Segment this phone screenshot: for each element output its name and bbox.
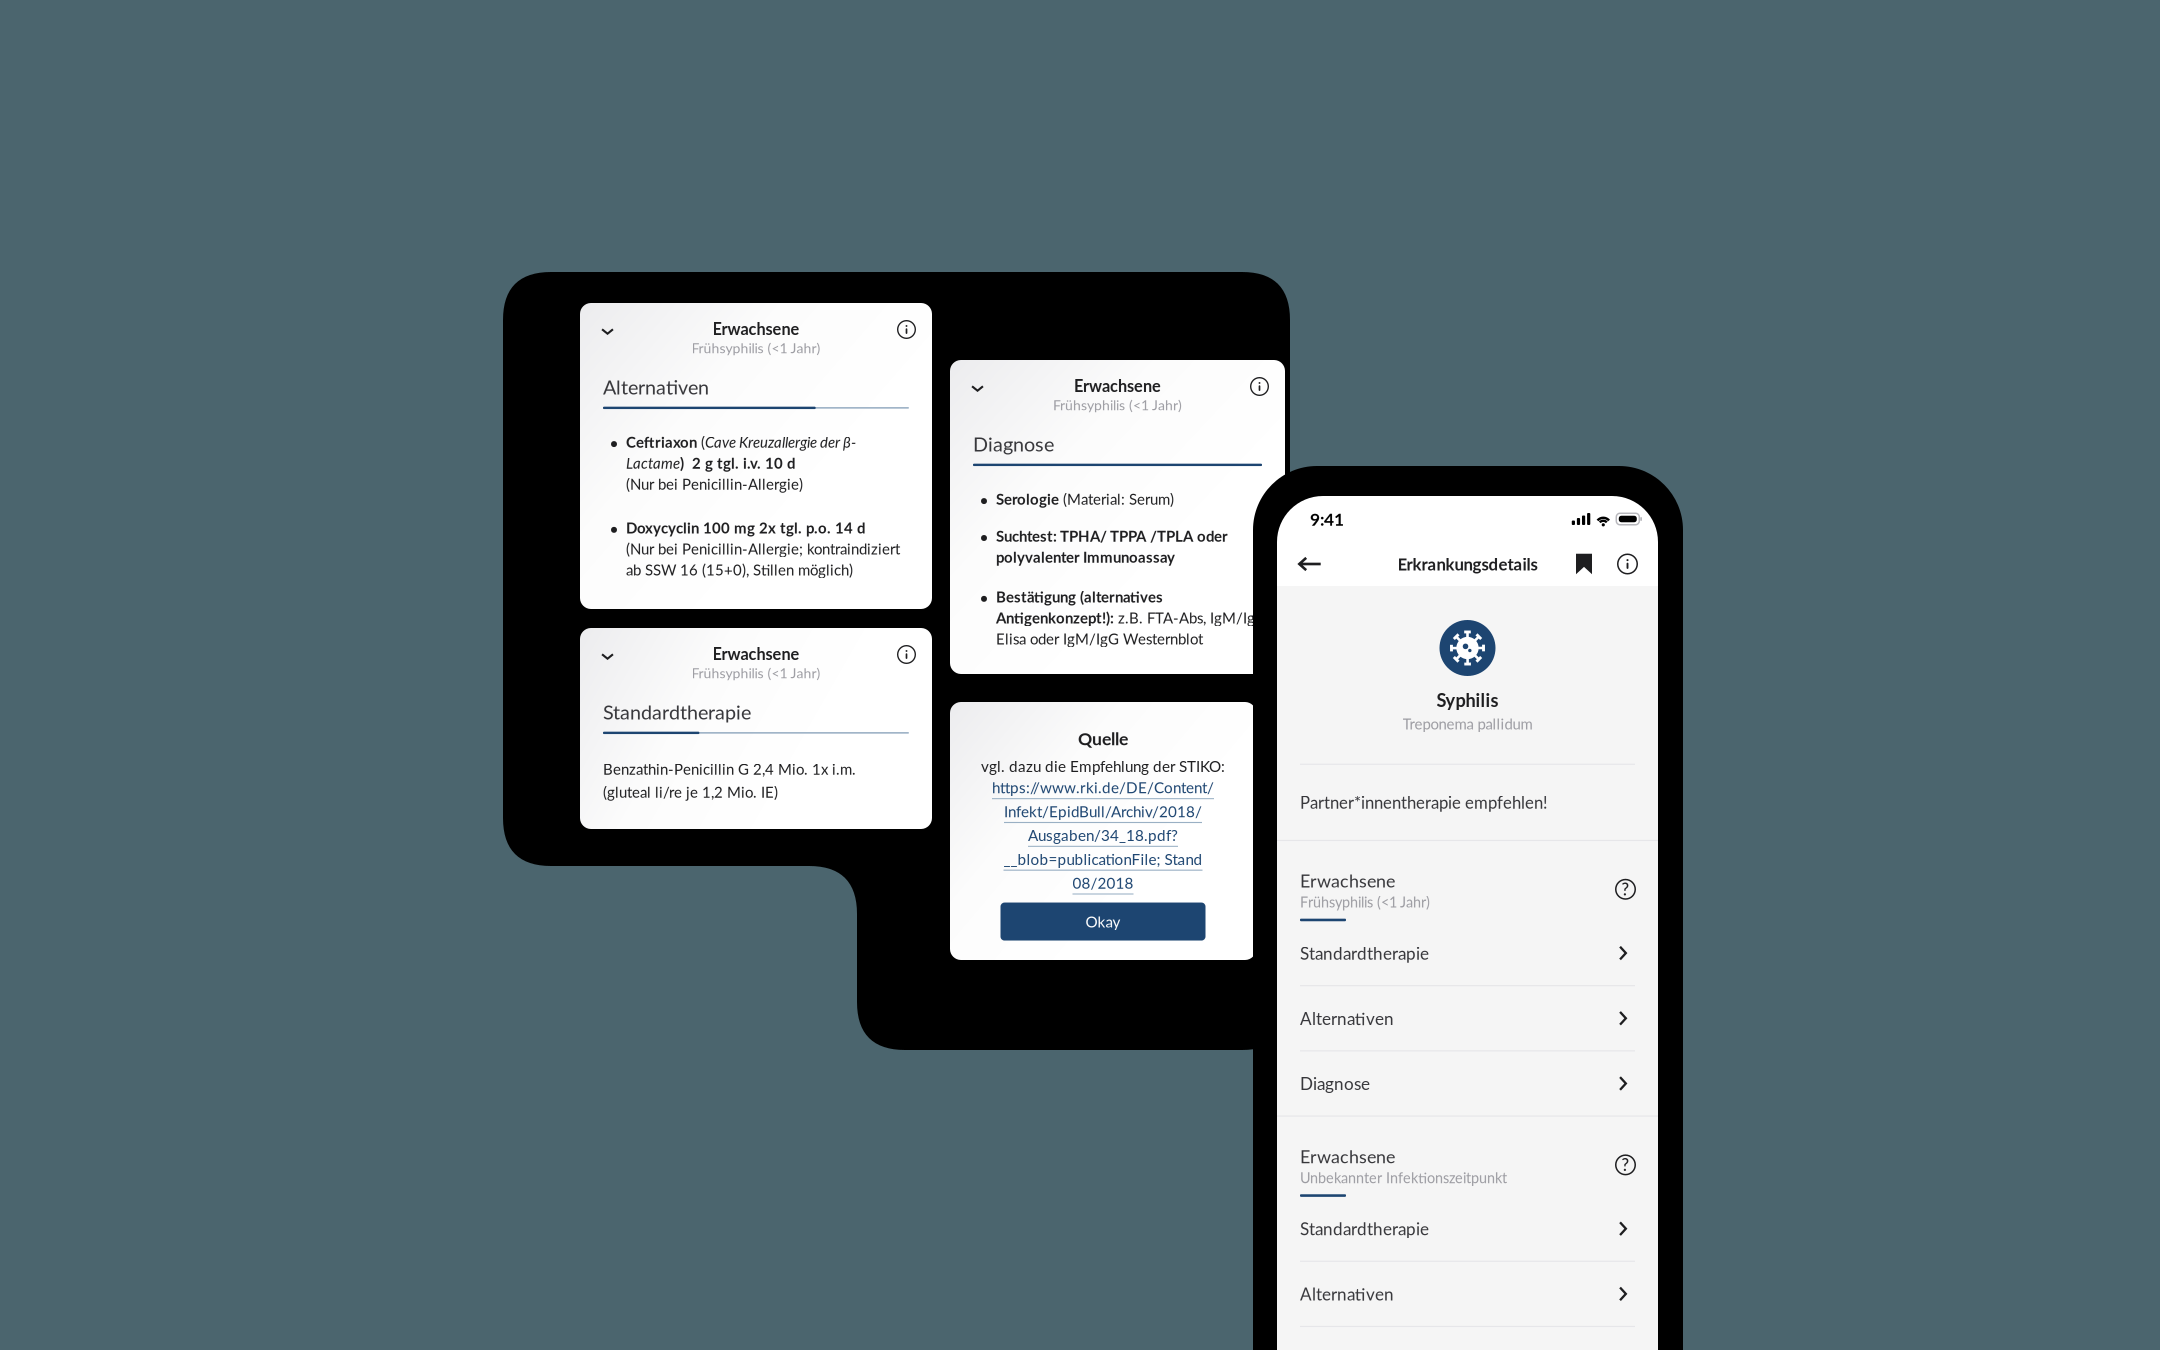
staticText: ( — [701, 433, 705, 451]
button[interactable]: Ausgaben/34_18.pdf? — [1028, 826, 1178, 847]
button[interactable]: Hilfe — [1615, 879, 1636, 900]
staticText: https://www.rki.de/DE/Content/ — [992, 778, 1214, 797]
staticText: Frühsyphilis (<1 Jahr) — [691, 664, 820, 681]
button[interactable]: Hilfe — [1615, 1154, 1636, 1175]
staticText: __blob=publicationFile; Stand — [1003, 850, 1202, 868]
button[interactable]: Standardtherapie — [1277, 921, 1658, 985]
staticText: Serologie — [996, 490, 1063, 508]
staticText: Frühsyphilis (<1 Jahr) — [691, 339, 820, 356]
staticText: Standardtherapie — [603, 700, 751, 724]
button[interactable]: Diagnose — [1277, 1051, 1658, 1115]
staticText: 9:41 — [1310, 509, 1344, 529]
button[interactable]: Lesezeichen — [1576, 554, 1592, 574]
staticText: Bestätigung (alternatives — [996, 588, 1163, 606]
staticText: z.B. FTA-Abs, IgM/IgG — [1114, 609, 1266, 627]
staticText: Doxycyclin 100 mg 2x tgl. p.o. 14 d — [626, 519, 865, 537]
staticText: Benzathin-Penicillin G 2,4 Mio. 1x i.m. — [603, 760, 856, 778]
button[interactable]: Alternativen — [1277, 1262, 1658, 1326]
staticText: ? — [1621, 879, 1629, 899]
staticText: Ausgaben/34_18.pdf? — [1028, 826, 1178, 844]
staticText: Erkrankungsdetails — [1397, 554, 1537, 574]
staticText: Frühsyphilis (<1 Jahr) — [1300, 893, 1430, 911]
button[interactable]: __blob=publicationFile; Stand — [1003, 850, 1202, 871]
button[interactable]: Info — [1250, 377, 1269, 396]
staticText: Erwachsene — [712, 644, 799, 663]
button[interactable]: Info — [897, 320, 916, 339]
button[interactable]: Info — [897, 645, 916, 664]
staticText: 08/2018 — [1072, 874, 1133, 892]
button[interactable]: Info — [1617, 553, 1638, 574]
staticText: ) 2 g tgl. i.v. 10 d — [680, 454, 795, 472]
button[interactable]: Einklappen — [601, 653, 614, 660]
staticText: Okay — [1085, 912, 1120, 931]
staticText: Quelle — [1078, 728, 1128, 749]
staticText: Erwachsene — [1300, 870, 1395, 891]
staticText: (Nur bei Penicillin-Allergie) — [626, 475, 803, 493]
staticText: Erwachsene — [1074, 376, 1161, 395]
staticText: (Material: Serum) — [1063, 490, 1174, 508]
button[interactable]: Einklappen — [601, 328, 614, 335]
staticText: Diagnose — [973, 432, 1054, 456]
staticText: Standardtherapie — [1300, 943, 1429, 963]
button[interactable]: Zurück — [1298, 557, 1322, 571]
staticText: vgl. dazu die Empfehlung der STIKO: — [981, 757, 1225, 775]
staticText: Elisa oder IgM/IgG Westernblot — [996, 630, 1203, 648]
staticText: Alternativen — [1300, 1284, 1394, 1304]
staticText: Ceftriaxon — [626, 433, 701, 451]
staticText: (gluteal li/re je 1,2 Mio. IE) — [603, 783, 778, 801]
staticText: Diagnose — [1300, 1073, 1370, 1094]
staticText: Infekt/EpidBull/Archiv/2018/ — [1004, 802, 1202, 820]
button[interactable]: Alternativen — [1277, 986, 1658, 1050]
staticText: Frühsyphilis (<1 Jahr) — [1053, 396, 1182, 413]
staticText: (Nur bei Penicillin-Allergie; kontraindi… — [626, 540, 900, 558]
staticText: Lactame — [626, 454, 680, 472]
staticText: Standardtherapie — [1300, 1218, 1429, 1239]
staticText: Unbekannter Infektionszeitpunkt — [1300, 1169, 1507, 1186]
staticText: Syphilis — [1436, 689, 1498, 711]
button[interactable]: https://www.rki.de/DE/Content/ — [992, 778, 1214, 799]
staticText: Alternativen — [603, 375, 709, 399]
staticText: Treponema pallidum — [1402, 715, 1532, 733]
staticText: ab SSW 16 (15+0), Stillen möglich) — [626, 561, 853, 579]
staticText: Erwachsene — [712, 319, 799, 338]
staticText: Antigenkonzept!): — [996, 609, 1114, 627]
staticText: Erwachsene — [1300, 1145, 1395, 1167]
button[interactable]: Infekt/EpidBull/Archiv/2018/ — [1004, 802, 1202, 823]
button[interactable]: Einklappen — [971, 385, 984, 392]
staticText: Cave Kreuzallergie der β- — [705, 433, 856, 451]
button[interactable]: Standardtherapie — [1277, 1197, 1658, 1261]
button[interactable]: 08/2018 — [1072, 874, 1133, 894]
staticText: ? — [1621, 1154, 1629, 1175]
staticText: polyvalenter Immunoassay — [996, 548, 1175, 566]
button[interactable]: Okay — [1000, 903, 1205, 941]
staticText: Suchtest: TPHA/ TPPA /TPLA oder — [996, 527, 1228, 545]
staticText: Alternativen — [1300, 1008, 1394, 1028]
staticText: Partner*innentherapie empfehlen! — [1300, 792, 1547, 812]
